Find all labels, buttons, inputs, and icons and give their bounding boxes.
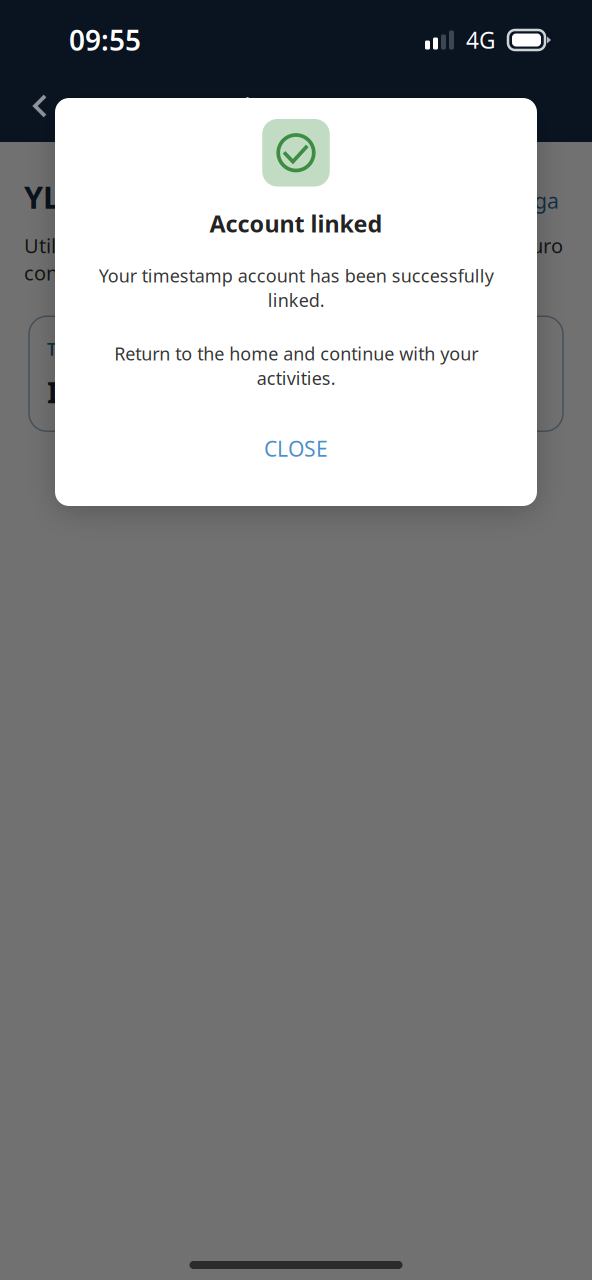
button[interactable]: Scopri e collega	[400, 186, 568, 215]
staticText: Timestamp	[230, 90, 362, 122]
staticText: 09:55	[69, 21, 141, 59]
staticText: TIMESTAMP	[47, 337, 147, 361]
staticText: 4G	[466, 25, 496, 55]
staticText: Utilizza la tua identita digitale per ac…	[24, 232, 563, 286]
button[interactable]: Back	[11, 80, 69, 132]
button[interactable]: CLOSE	[234, 420, 358, 477]
staticText: Il tuo account	[47, 372, 250, 412]
staticText: CLOSE	[264, 434, 328, 463]
staticText: Return to the home and continue with you…	[114, 341, 478, 390]
staticText: Scopri e collega	[400, 186, 559, 215]
staticText: YLIDENTITY	[24, 176, 203, 218]
staticText: Account linked	[209, 207, 382, 239]
staticText: Your timestamp account has been successf…	[98, 263, 493, 312]
